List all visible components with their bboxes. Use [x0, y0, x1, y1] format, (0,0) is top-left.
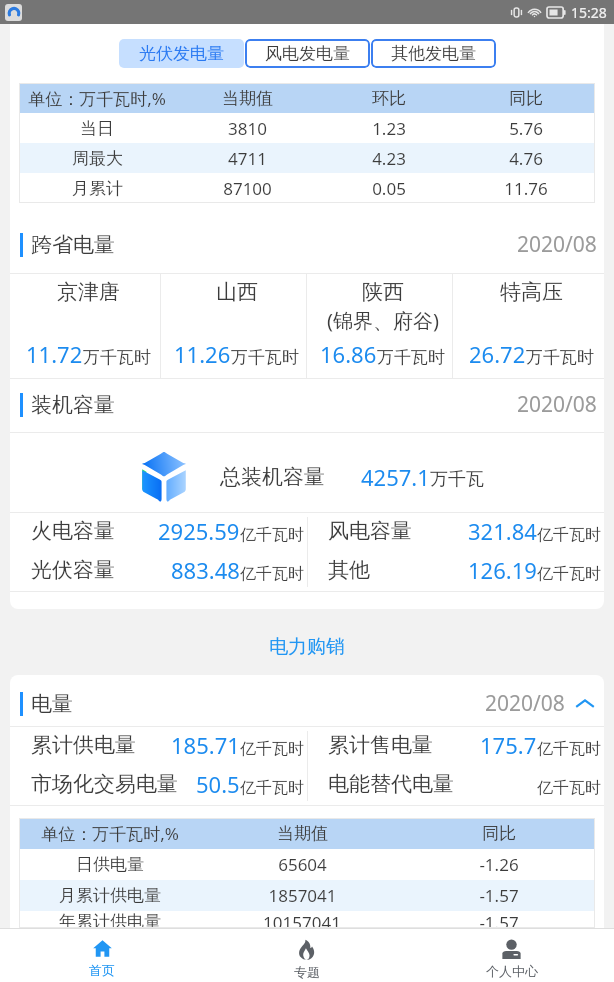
staticText: 万千瓦时	[231, 347, 299, 368]
staticText: 累计售电量	[328, 732, 433, 758]
staticText: 当日	[80, 118, 114, 139]
staticText: 同比	[509, 88, 543, 109]
staticText: 50.5	[196, 769, 240, 799]
staticText: 日供电量	[76, 854, 144, 875]
staticText: 装机容量	[31, 392, 115, 418]
staticText: 亿千瓦时	[537, 739, 601, 759]
staticText: 185.71	[171, 730, 240, 760]
staticText: 10157041	[263, 911, 341, 928]
button[interactable]: 累计售电量	[307, 727, 604, 766]
staticText: 1857041	[268, 884, 337, 907]
staticText: 亿千瓦时	[537, 564, 601, 584]
button[interactable]: 电量	[20, 681, 595, 726]
staticText: 京津唐	[57, 279, 120, 305]
staticText: 3810	[228, 117, 267, 140]
staticText: 11.26	[174, 339, 231, 369]
staticText: 风电容量	[328, 518, 412, 544]
staticText: 883.48	[171, 555, 240, 585]
staticText: 特高压	[500, 279, 563, 305]
button[interactable]: 个人中心	[409, 929, 614, 982]
button[interactable]: 风电容量	[307, 513, 604, 552]
staticText: 亿千瓦时	[240, 525, 304, 545]
staticText: 陕西	[362, 279, 404, 305]
staticText: 个人中心	[486, 963, 538, 979]
staticText: 16.86	[320, 339, 377, 369]
staticText: 月累计供电量	[59, 885, 161, 906]
staticText: 光伏容量	[31, 557, 115, 583]
staticText: 总装机容量	[220, 464, 325, 490]
staticText: 4257.1	[361, 462, 430, 492]
staticText: 亿千瓦时	[240, 564, 304, 584]
staticText: 万千瓦时	[377, 347, 445, 368]
staticText: 风电发电量	[265, 43, 350, 64]
button[interactable]: 专题	[204, 929, 409, 982]
staticText: 126.19	[468, 555, 537, 585]
staticText: 市场化交易电量	[31, 771, 178, 797]
button[interactable]: 光伏发电量	[119, 39, 244, 68]
staticText: 2925.59	[158, 516, 240, 546]
button[interactable]: 首页	[0, 929, 204, 982]
staticText: 月累计	[72, 178, 123, 199]
button[interactable]: 市场化交易电量	[10, 766, 307, 805]
button[interactable]: 电力购销	[269, 635, 345, 659]
other: Collapse	[575, 694, 595, 714]
staticText: 同比	[482, 823, 516, 844]
staticText: 年累计供电量	[59, 911, 161, 928]
staticText: 电能替代电量	[328, 771, 454, 797]
staticText: 山西	[216, 279, 258, 305]
staticText: 专题	[294, 964, 320, 980]
button[interactable]: 风电发电量	[245, 39, 370, 68]
button[interactable]: 火电容量	[10, 513, 307, 552]
button[interactable]: 陕西	[307, 274, 452, 378]
button[interactable]: 京津唐	[10, 274, 160, 378]
button[interactable]: 其他	[307, 552, 604, 591]
staticText: 万千瓦时	[83, 347, 151, 368]
staticText: 4711	[228, 147, 267, 170]
staticText: (锦界、府谷)	[327, 307, 439, 334]
staticText: 当期值	[277, 823, 328, 844]
staticText: 65604	[278, 853, 327, 876]
staticText: 光伏发电量	[139, 43, 224, 64]
staticText: 2020/08	[485, 689, 565, 718]
staticText: 首页	[89, 962, 115, 978]
staticText: 其他	[328, 557, 370, 583]
staticText: 11.76	[504, 177, 548, 200]
button[interactable]: 特高压	[453, 274, 604, 378]
staticText: 亿千瓦时	[240, 778, 304, 798]
staticText: 11.72	[26, 339, 83, 369]
button[interactable]: 累计供电量	[10, 727, 307, 766]
staticText: 万千瓦时	[526, 347, 594, 368]
staticText: 4.76	[509, 147, 543, 170]
staticText: 累计供电量	[31, 732, 136, 758]
button[interactable]: 其他发电量	[371, 39, 496, 68]
staticText: -1.26	[479, 853, 519, 876]
staticText: 26.72	[469, 339, 526, 369]
staticText: 4.23	[372, 147, 406, 170]
staticText: 亿千瓦时	[240, 739, 304, 759]
staticText: 2020/08	[517, 390, 597, 419]
staticText: -1.57	[479, 911, 519, 928]
staticText: 跨省电量	[31, 232, 115, 258]
staticText: 当期值	[222, 88, 273, 109]
staticText: 单位：万千瓦时,%	[41, 822, 179, 845]
staticText: 1.23	[372, 117, 406, 140]
staticText: 周最大	[72, 148, 123, 169]
staticText: 175.7	[480, 730, 537, 760]
staticText: 0.05	[372, 177, 406, 200]
staticText: 其他发电量	[391, 43, 476, 64]
staticText: 15:28	[571, 3, 607, 22]
button[interactable]: 山西	[161, 274, 306, 378]
staticText: 亿千瓦时	[537, 778, 601, 798]
staticText: 火电容量	[31, 518, 115, 544]
button[interactable]: 光伏容量	[10, 552, 307, 591]
staticText: 单位：万千瓦时,%	[28, 87, 166, 110]
staticText: 321.84	[468, 516, 537, 546]
staticText: 电量	[31, 691, 73, 717]
staticText: 87100	[223, 177, 272, 200]
button[interactable]: 电能替代电量	[307, 766, 604, 805]
staticText: 万千瓦	[430, 468, 484, 491]
staticText: -1.57	[479, 884, 519, 907]
staticText: 2020/08	[517, 230, 597, 259]
staticText: 环比	[372, 88, 406, 109]
staticText: 5.76	[509, 117, 543, 140]
